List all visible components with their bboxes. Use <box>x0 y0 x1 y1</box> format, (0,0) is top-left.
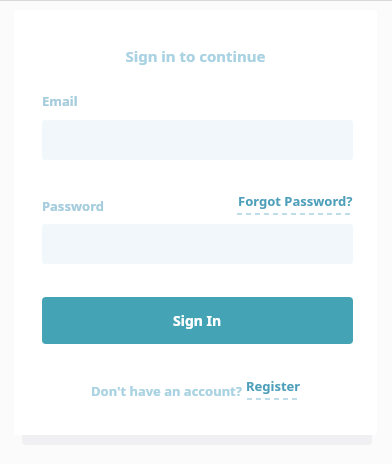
staticText: Forgot Password? <box>238 192 353 210</box>
button[interactable]: Sign In <box>42 297 353 344</box>
button[interactable]: Register <box>246 377 301 400</box>
staticText: Email <box>42 92 78 110</box>
staticText: Don't have an account? <box>91 382 246 400</box>
staticText: Sign in to continue <box>14 46 377 66</box>
staticText: Register <box>246 377 301 395</box>
button[interactable]: Forgot Password? <box>237 192 353 215</box>
staticText: Sign In <box>173 311 222 330</box>
staticText: Password <box>42 197 104 215</box>
